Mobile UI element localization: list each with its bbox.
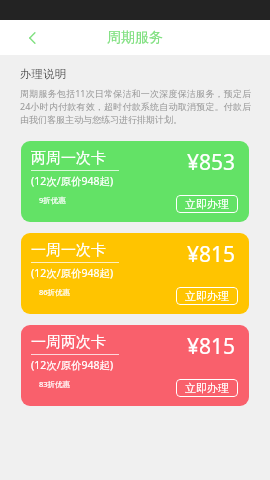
staticText: ¥815 — [187, 240, 236, 269]
staticText: (12次/原价948起) — [31, 266, 114, 280]
staticText: 一周两次卡 — [31, 333, 106, 352]
staticText: (12次/原价948起) — [31, 358, 114, 372]
staticText: 立即办理 — [185, 381, 229, 395]
staticText: 周期服务包括11次日常保洁和一次深度保洁服务，预定后24小时内付款有效，超时付款… — [20, 87, 251, 125]
staticText: 一周一次卡 — [31, 241, 106, 260]
staticText: 两周一次卡 — [31, 149, 106, 168]
staticText: 立即办理 — [185, 289, 229, 303]
button[interactable]: 立即办理 — [176, 287, 238, 305]
staticText: ¥815 — [187, 332, 236, 361]
button[interactable]: 立即办理 — [176, 379, 238, 397]
staticText: 办理说明 — [20, 67, 66, 81]
button[interactable]: 两周一次卡 — [21, 141, 249, 222]
button[interactable]: 一周一次卡 — [21, 233, 249, 314]
staticText: 86折优惠 — [39, 287, 71, 297]
staticText: 83折优惠 — [39, 379, 71, 389]
staticText: ¥853 — [187, 148, 236, 177]
button[interactable]: 立即办理 — [176, 195, 238, 213]
staticText: 立即办理 — [185, 197, 229, 211]
staticText: (12次/原价948起) — [31, 174, 114, 188]
button[interactable]: Back — [18, 23, 48, 53]
staticText: 9折优惠 — [39, 195, 66, 205]
button[interactable]: 一周两次卡 — [21, 325, 249, 406]
staticText: 周期服务 — [107, 29, 163, 47]
